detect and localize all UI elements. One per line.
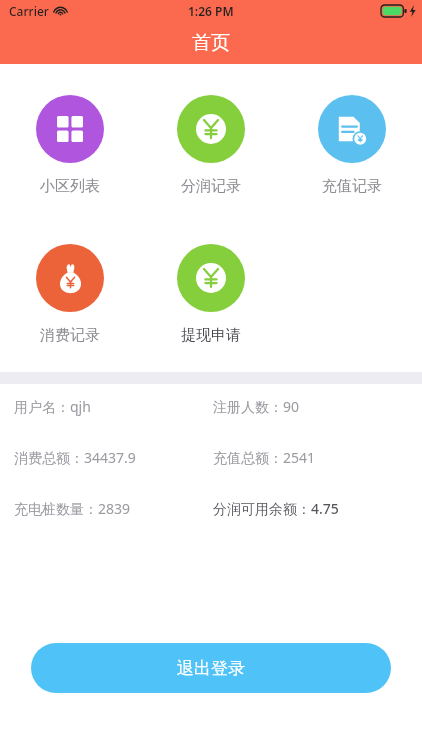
button[interactable]: 充值记录	[281, 95, 422, 196]
staticText: 首页	[192, 31, 230, 55]
staticText: 退出登录	[177, 658, 245, 679]
other: 消费记录	[56, 264, 85, 293]
staticText: 充电桩数量：2839	[14, 499, 213, 518]
staticText: 充值记录	[322, 177, 382, 196]
button[interactable]: 金额	[140, 95, 281, 196]
other: 小区列表	[57, 116, 83, 142]
staticText: 消费记录	[40, 326, 100, 345]
other: 金额	[196, 263, 226, 293]
staticText: 分润记录	[181, 177, 241, 196]
staticText: Carrier	[9, 3, 49, 19]
button[interactable]: 退出登录	[31, 643, 391, 693]
button[interactable]: 消费记录	[0, 244, 140, 345]
staticText: 提现申请	[181, 326, 241, 345]
staticText: 1:26 PM	[188, 3, 234, 19]
other: 充值记录	[337, 114, 367, 144]
staticText: 用户名：qjh	[14, 397, 213, 416]
button[interactable]: 小区列表	[0, 95, 140, 196]
staticText: 分润可用余额：4.75	[213, 499, 339, 518]
staticText: 注册人数：90	[213, 397, 300, 416]
other: 金额	[196, 114, 226, 144]
staticText: 充值总额：2541	[213, 448, 316, 467]
staticText: 消费总额：34437.9	[14, 448, 213, 467]
button[interactable]: 金额	[140, 244, 281, 345]
staticText: 小区列表	[40, 177, 100, 196]
